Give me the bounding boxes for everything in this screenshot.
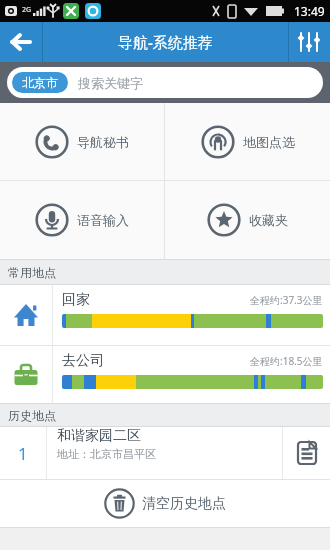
- staticText: 回家: [62, 291, 90, 309]
- staticText: 1: [18, 442, 28, 465]
- staticText: 历史地点: [8, 408, 56, 423]
- button[interactable]: 清空历史地点: [0, 480, 330, 527]
- button[interactable]: 语音输入: [0, 181, 164, 259]
- button[interactable]: [283, 427, 330, 479]
- staticText: 语音输入: [77, 212, 129, 228]
- staticText: 北京市: [22, 75, 58, 90]
- button[interactable]: 收藏夹: [165, 181, 330, 259]
- staticText: 搜索关键字: [78, 75, 143, 91]
- staticText: 收藏夹: [249, 212, 288, 228]
- button[interactable]: 回家: [0, 285, 330, 345]
- button[interactable]: 北京市: [22, 75, 58, 90]
- button[interactable]: [288, 22, 330, 62]
- button[interactable]: [0, 22, 42, 62]
- staticText: 清空历史地点: [142, 495, 226, 513]
- button[interactable]: 北京市: [7, 67, 323, 98]
- staticText: 全程约:37.3公里: [250, 293, 323, 307]
- staticText: 全程约:18.5公里: [250, 354, 323, 368]
- staticText: 13:49: [294, 3, 325, 19]
- button[interactable]: 导航秘书: [0, 103, 164, 180]
- staticText: 常用地点: [8, 265, 56, 280]
- staticText: 去公司: [62, 352, 104, 370]
- staticText: 地图点选: [243, 134, 295, 150]
- staticText: 2G: [22, 5, 32, 15]
- staticText: 和谐家园二区: [57, 427, 141, 445]
- button[interactable]: 1: [0, 427, 330, 479]
- staticText: 导航秘书: [77, 134, 129, 150]
- staticText: 导航-系统推荐: [118, 32, 213, 52]
- staticText: 地址：北京市昌平区: [57, 447, 156, 461]
- button[interactable]: 地图点选: [165, 103, 330, 180]
- button[interactable]: 去公司: [0, 346, 330, 403]
